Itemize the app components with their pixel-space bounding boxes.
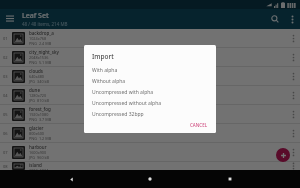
- staticText: 06: [3, 131, 12, 136]
- button[interactable]: Recent apps: [221, 170, 239, 188]
- staticText: 2048x1536: [29, 55, 49, 60]
- button[interactable]: 02: [0, 48, 300, 66]
- staticText: backdrop_a: [29, 30, 54, 36]
- button[interactable]: Uncompressed 32bpp: [84, 109, 216, 120]
- staticText: clouds: [29, 68, 43, 74]
- button[interactable]: With alpha: [84, 65, 216, 76]
- staticText: Uncompressed with alpha: [92, 89, 154, 96]
- staticText: harbour: [29, 144, 47, 150]
- staticText: 1024x1024: [29, 168, 49, 170]
- staticText: 02: [3, 55, 12, 60]
- button[interactable]: Add: [276, 148, 290, 162]
- staticText: CANCEL: [190, 122, 208, 128]
- button[interactable]: Item options: [286, 29, 300, 47]
- staticText: dune: [29, 87, 41, 93]
- button[interactable]: Back: [62, 170, 80, 188]
- staticText: Uncompressed without alpha: [92, 100, 162, 107]
- button[interactable]: Item options: [286, 105, 300, 123]
- staticText: 08: [3, 164, 12, 169]
- button[interactable]: CANCEL: [187, 120, 211, 130]
- button[interactable]: Home: [141, 170, 159, 188]
- staticText: Import: [92, 52, 114, 61]
- button[interactable]: 05: [0, 105, 300, 123]
- button[interactable]: Uncompressed with alpha: [84, 87, 216, 98]
- staticText: Without alpha: [92, 78, 126, 85]
- staticText: 1920x1080: [29, 112, 49, 117]
- staticText: 1280x720: [29, 93, 47, 98]
- button[interactable]: 04: [0, 86, 300, 104]
- button[interactable]: Without alpha: [84, 76, 216, 87]
- staticText: 01: [3, 36, 12, 41]
- button[interactable]: Search: [266, 10, 284, 28]
- staticText: glacier: [29, 125, 44, 131]
- button[interactable]: 08: [0, 162, 300, 170]
- button[interactable]: Item options: [286, 86, 300, 104]
- staticText: 07: [3, 150, 12, 155]
- staticText: With alpha: [92, 67, 118, 74]
- button[interactable]: Item options: [286, 48, 300, 66]
- button[interactable]: Uncompressed without alpha: [84, 98, 216, 109]
- staticText: island: [29, 162, 42, 168]
- staticText: JPG 340 kB: [29, 79, 50, 84]
- staticText: PNG 2.4 MB: [29, 41, 52, 46]
- staticText: 03: [3, 74, 12, 79]
- staticText: JPG 960 kB: [29, 155, 50, 160]
- staticText: 800x600: [29, 131, 45, 136]
- staticText: JPG 810 kB: [29, 98, 50, 103]
- staticText: PNG 3.7 MB: [29, 117, 52, 122]
- button[interactable]: 03: [0, 67, 300, 85]
- staticText: Leaf Set: [22, 11, 49, 21]
- button[interactable]: More options: [284, 11, 300, 27]
- staticText: 1024x768: [29, 36, 47, 41]
- staticText: 05: [3, 112, 12, 117]
- staticText: city_night_sky: [29, 49, 59, 55]
- staticText: PNG 1.2 MB: [29, 136, 52, 141]
- button[interactable]: 07: [0, 143, 300, 161]
- staticText: PNG 5.1 MB: [29, 60, 52, 65]
- staticText: 04: [3, 93, 12, 98]
- staticText: Uncompressed 32bpp: [92, 111, 144, 118]
- staticText: forest_fog: [29, 106, 51, 112]
- button[interactable]: Item options: [286, 143, 300, 161]
- button[interactable]: Leaf Set: [22, 11, 266, 27]
- staticText: 1600x900: [29, 150, 47, 155]
- button[interactable]: Item options: [286, 67, 300, 85]
- staticText: 48 / 48 items, 214 MB: [22, 21, 68, 27]
- staticText: 640x480: [29, 74, 45, 79]
- button[interactable]: Item options: [286, 124, 300, 142]
- button[interactable]: 06: [0, 124, 300, 142]
- button[interactable]: 01: [0, 29, 300, 47]
- button[interactable]: Item options: [286, 162, 300, 170]
- button[interactable]: Open navigation drawer: [0, 9, 20, 29]
